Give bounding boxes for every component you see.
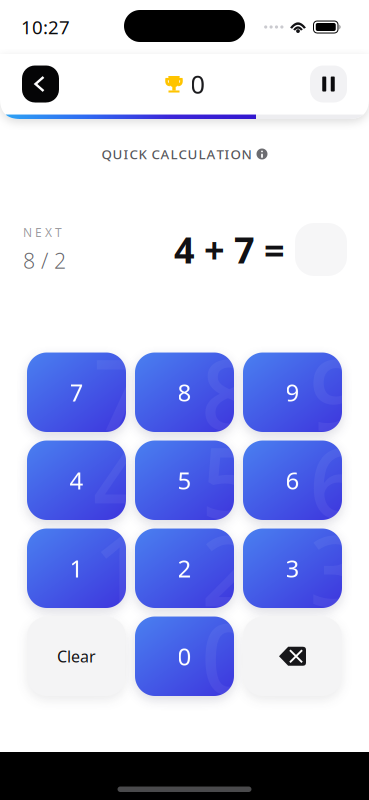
staticText: 2 bbox=[177, 552, 191, 584]
staticText: 2 bbox=[201, 503, 257, 634]
button[interactable]: 8 bbox=[135, 352, 234, 432]
button[interactable]: Back bbox=[22, 65, 59, 102]
staticText: 8 / 2 bbox=[23, 246, 66, 275]
button[interactable]: Clear bbox=[27, 616, 126, 696]
staticText: 7 bbox=[93, 327, 149, 458]
staticText: 8 bbox=[201, 327, 257, 458]
button[interactable]: 9 bbox=[243, 352, 342, 432]
staticText: 5 bbox=[201, 415, 257, 546]
staticText: Clear bbox=[57, 646, 96, 667]
staticText: 3 bbox=[309, 503, 365, 634]
staticText: 1 bbox=[69, 552, 83, 584]
button[interactable]: 0 bbox=[135, 616, 234, 696]
button[interactable]: 7 bbox=[27, 352, 126, 432]
button[interactable]: Delete bbox=[243, 616, 342, 696]
staticText: 1 bbox=[93, 503, 149, 634]
staticText: 4 + 7 = bbox=[174, 226, 285, 273]
button[interactable]: 4 bbox=[27, 440, 126, 520]
staticText: 4 bbox=[69, 464, 83, 496]
staticText: 9 bbox=[285, 376, 299, 408]
button[interactable]: 3 bbox=[243, 528, 342, 608]
staticText: 4 bbox=[93, 415, 149, 546]
button[interactable]: 2 bbox=[135, 528, 234, 608]
staticText: 6 bbox=[285, 464, 299, 496]
button[interactable]: 1 bbox=[27, 528, 126, 608]
button[interactable]: Pause bbox=[310, 65, 347, 102]
staticText: 0 bbox=[201, 591, 257, 722]
button[interactable]: 6 bbox=[243, 440, 342, 520]
staticText: N E X T bbox=[23, 224, 62, 240]
staticText: 0 bbox=[177, 640, 191, 672]
staticText: 10:27 bbox=[21, 15, 70, 39]
button[interactable]: 5 bbox=[135, 440, 234, 520]
staticText: 8 bbox=[177, 376, 191, 408]
staticText: 6 bbox=[309, 415, 365, 546]
staticText: 3 bbox=[285, 552, 299, 584]
staticText: 9 bbox=[309, 327, 365, 458]
staticText: Q U I C K C A L C U L A T I O N bbox=[101, 145, 251, 163]
staticText: 7 bbox=[69, 376, 83, 408]
staticText: 0 bbox=[190, 67, 204, 101]
staticText: 5 bbox=[177, 464, 191, 496]
